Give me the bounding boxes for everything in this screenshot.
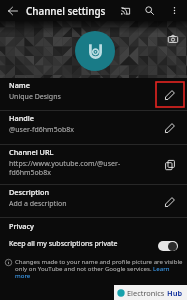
staticText: Name <box>9 80 30 90</box>
button[interactable]: Search <box>137 0 162 21</box>
button[interactable]: More options <box>162 0 187 21</box>
staticText: Channel settings <box>26 4 106 17</box>
staticText: Channel URL <box>9 147 54 157</box>
staticText: Changes made to your name and profile pi… <box>15 257 184 280</box>
button[interactable]: Keep all my subscriptions private <box>0 236 187 252</box>
staticText: Keep all my subscriptions private <box>9 239 158 249</box>
button[interactable]: Cast <box>114 0 137 21</box>
button[interactable]: Back <box>0 0 26 21</box>
button[interactable]: Copy channel URL <box>156 152 184 177</box>
staticText: Hub <box>167 288 183 298</box>
staticText: Handle <box>9 113 34 123</box>
staticText: Privacy <box>9 221 34 231</box>
button[interactable]: Description <box>0 185 187 217</box>
button[interactable]: Channel URL <box>0 145 187 184</box>
button[interactable]: Edit handle <box>156 115 184 140</box>
staticText: Description <box>9 187 50 197</box>
button[interactable]: Change profile picture <box>75 31 115 71</box>
button[interactable]: Change banner image <box>164 30 182 48</box>
button[interactable]: Edit name <box>156 82 184 107</box>
staticText: Electronics <box>127 288 167 298</box>
button[interactable]: Edit description <box>156 189 184 214</box>
staticText: Add a description <box>9 199 134 209</box>
staticText: @user-fd6hm5ob8x <box>9 125 134 135</box>
button[interactable]: Name <box>0 78 187 110</box>
button[interactable]: Handle <box>0 111 187 144</box>
staticText: https://www.youtube.com/@user-fd6hm5ob8x <box>9 159 134 177</box>
staticText: Unique Designs <box>9 92 134 102</box>
